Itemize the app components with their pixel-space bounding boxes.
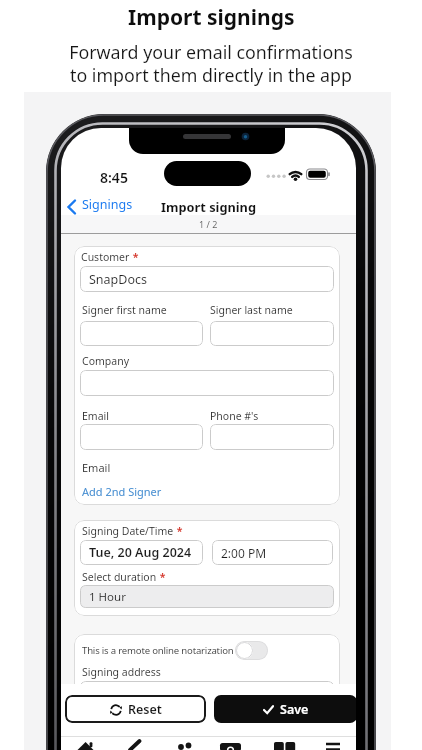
staticText: Signer first name — [82, 303, 167, 317]
staticText: Phone #'s — [210, 409, 259, 423]
staticText: Email — [82, 460, 111, 475]
button[interactable]: SnapDocs — [80, 266, 334, 292]
staticText: * — [157, 570, 166, 584]
staticText: Save — [280, 701, 309, 718]
staticText: Select duration — [82, 570, 157, 584]
button[interactable]: 1 Hour — [80, 585, 334, 608]
staticText: 8:45 — [100, 168, 128, 187]
staticText: Email — [82, 409, 109, 423]
staticText: Company — [82, 354, 129, 368]
staticText: Forward your email confirmations to impo… — [69, 40, 353, 87]
staticText: Signing Date/Time — [82, 524, 174, 538]
button[interactable] — [80, 681, 334, 707]
button[interactable]: 2:00 PM — [212, 540, 333, 565]
staticText: 1 Hour — [89, 589, 126, 605]
button[interactable] — [80, 370, 334, 396]
button[interactable] — [235, 641, 268, 660]
staticText: SnapDocs — [89, 271, 147, 288]
button[interactable]: Add 2nd Signer — [82, 484, 162, 499]
staticText: Reset — [128, 701, 162, 718]
staticText: Tue, 20 Aug 2024 — [89, 544, 192, 561]
staticText: * — [174, 524, 183, 538]
button[interactable] — [80, 321, 203, 346]
button[interactable] — [210, 321, 334, 346]
staticText: This is a remote online notarization — [82, 644, 234, 657]
button[interactable] — [218, 738, 244, 750]
button[interactable]: Save — [214, 695, 356, 723]
button[interactable]: Tue, 20 Aug 2024 — [80, 540, 203, 565]
staticText: Signing address — [82, 665, 161, 679]
button[interactable] — [123, 738, 149, 750]
button[interactable] — [210, 424, 334, 450]
button[interactable] — [80, 424, 203, 450]
button[interactable] — [73, 738, 99, 750]
button[interactable] — [172, 738, 198, 750]
button[interactable] — [320, 738, 346, 750]
button[interactable]: Signings — [65, 196, 141, 218]
button[interactable] — [272, 738, 298, 750]
staticText: 2:00 PM — [221, 545, 267, 561]
staticText: Signer last name — [210, 303, 293, 317]
staticText: Import signings — [128, 3, 295, 32]
staticText: Signings — [82, 196, 133, 213]
button[interactable]: Reset — [65, 695, 206, 723]
staticText: Import signing — [161, 198, 257, 215]
staticText: 1 / 2 — [199, 218, 218, 230]
staticText: * — [130, 250, 139, 264]
staticText: Customer — [81, 250, 130, 264]
